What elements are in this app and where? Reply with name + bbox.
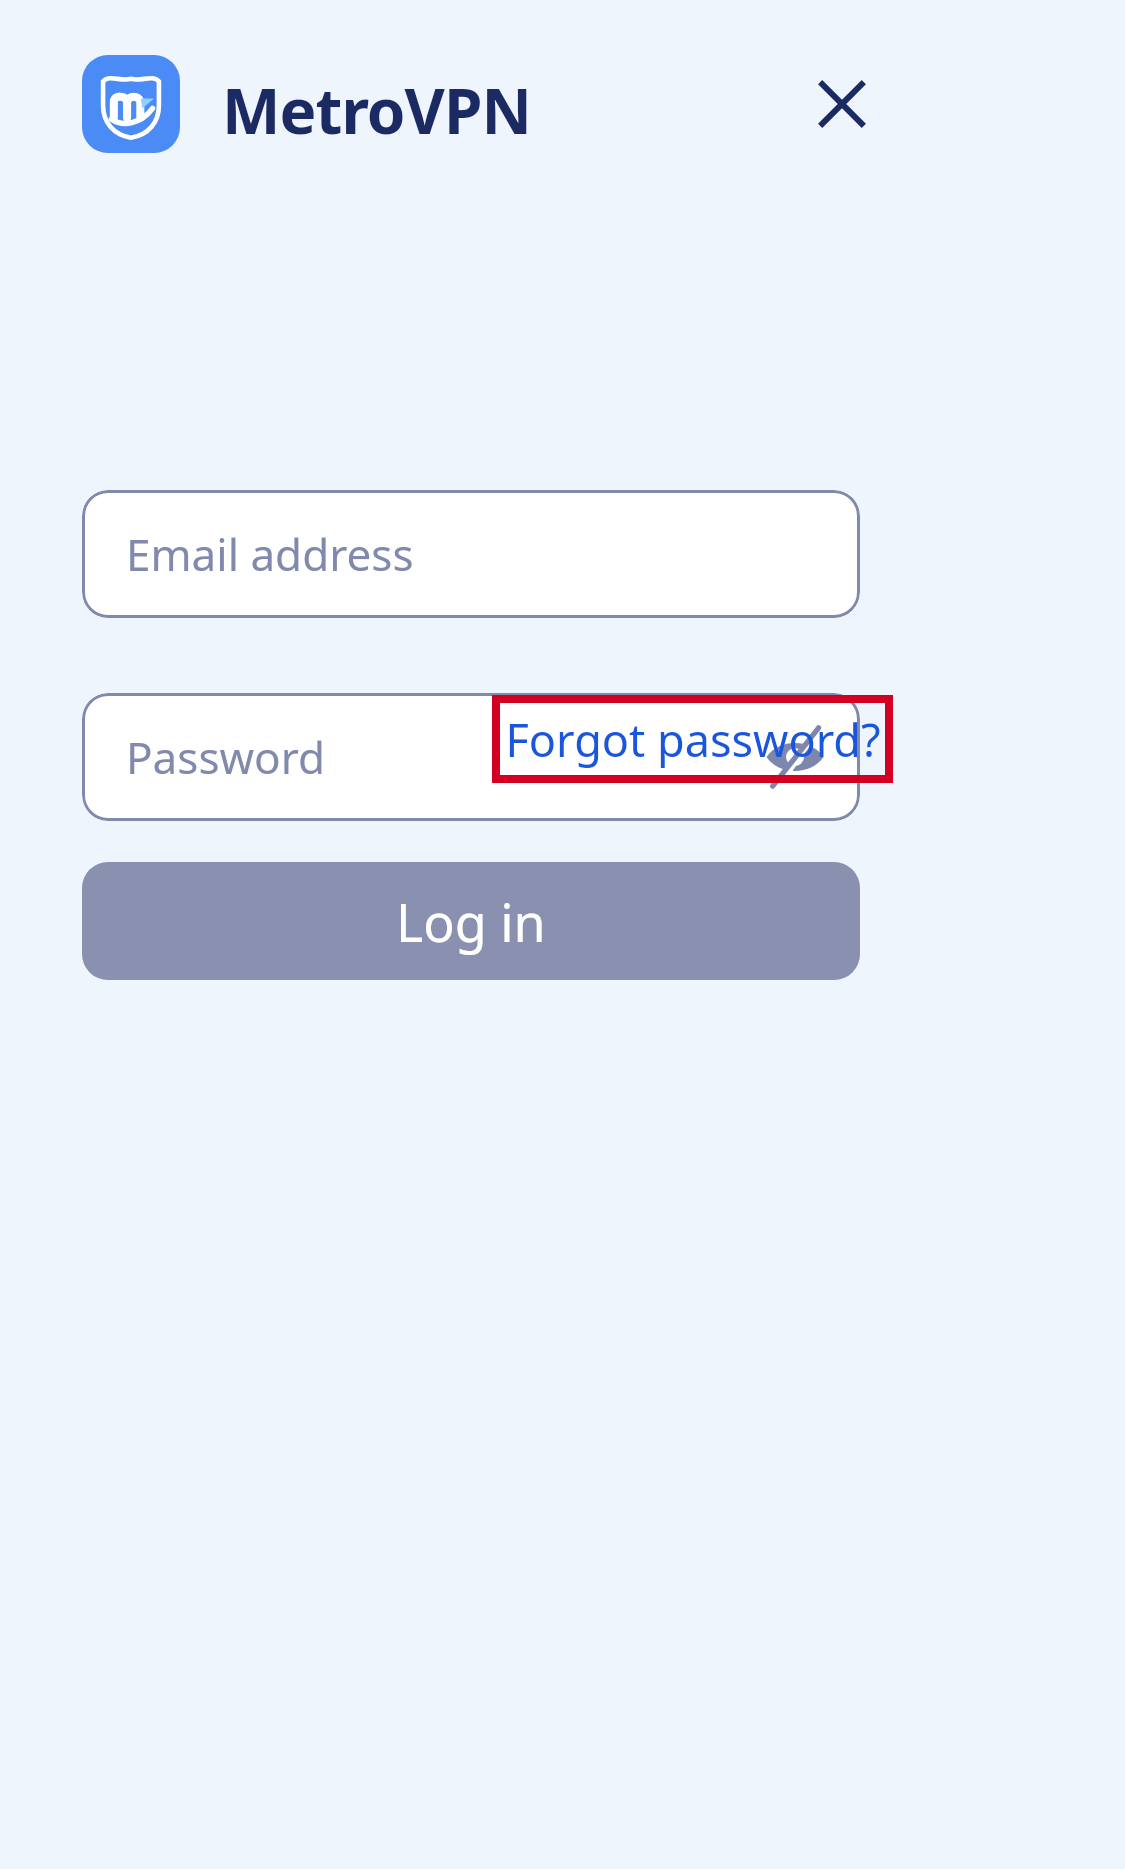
button[interactable]: Forgot password? [492, 695, 893, 783]
button[interactable]: Email address [82, 490, 860, 618]
button[interactable]: MetroVPN logo [82, 55, 180, 153]
staticText: Password [126, 727, 326, 787]
button[interactable]: Close [796, 58, 888, 150]
staticText: Forgot password? [505, 709, 881, 770]
button[interactable]: Show password [752, 714, 838, 800]
staticText: MetroVPN [222, 68, 531, 152]
button[interactable]: Password [82, 693, 860, 821]
staticText: Email address [126, 524, 414, 584]
staticText: Log in [396, 886, 546, 957]
button[interactable]: Log in [82, 862, 860, 980]
